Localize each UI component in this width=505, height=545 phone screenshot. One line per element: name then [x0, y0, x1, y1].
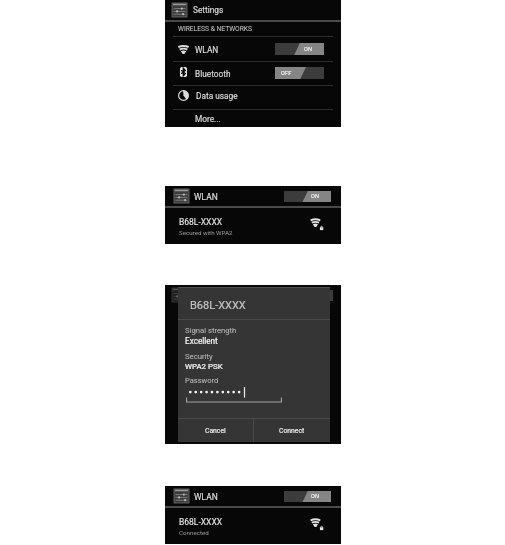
- staticText: WLAN: [195, 45, 219, 55]
- button[interactable]: [165, 208, 341, 244]
- staticText: Connected: [179, 529, 209, 536]
- button[interactable]: [165, 186, 341, 206]
- staticText: Cancel: [205, 427, 226, 435]
- button[interactable]: Connect: [254, 419, 330, 442]
- staticText: WIRELESS & NETWORKS: [178, 25, 252, 33]
- button[interactable]: Turn WLAN off: [284, 491, 331, 502]
- staticText: Connect: [279, 427, 305, 435]
- button[interactable]: Cancel: [178, 419, 253, 442]
- button[interactable]: [165, 486, 341, 506]
- staticText: Data usage: [196, 91, 238, 101]
- staticText: ON: [304, 46, 313, 53]
- staticText: ON: [311, 493, 320, 500]
- button[interactable]: Turn Bluetooth on: [275, 67, 324, 79]
- button[interactable]: [186, 386, 282, 404]
- staticText: OFF: [281, 70, 292, 77]
- staticText: Excellent: [185, 336, 218, 346]
- button[interactable]: [165, 62, 341, 86]
- staticText: B68L-XXXX: [190, 299, 246, 312]
- staticText: Password: [185, 376, 219, 385]
- staticText: Bluetooth: [195, 69, 231, 79]
- button[interactable]: [165, 37, 341, 62]
- staticText: B68L-XXXX: [179, 517, 223, 527]
- button[interactable]: Turn WLAN off: [275, 43, 324, 55]
- button[interactable]: [165, 508, 341, 544]
- button[interactable]: [165, 0, 341, 20]
- button[interactable]: [165, 86, 341, 110]
- staticText: WPA2 PSK: [185, 362, 223, 371]
- staticText: More...: [195, 114, 221, 124]
- staticText: WLAN: [194, 492, 218, 502]
- staticText: Signal strength: [185, 326, 237, 335]
- staticText: ON: [311, 193, 320, 200]
- staticText: Secured with WPA2: [179, 229, 233, 236]
- staticText: B68L-XXXX: [179, 217, 223, 227]
- staticText: WLAN: [194, 192, 218, 202]
- button[interactable]: [165, 110, 341, 128]
- staticText: Settings: [193, 5, 224, 15]
- button[interactable]: Turn WLAN off: [284, 191, 331, 202]
- staticText: Security: [185, 352, 213, 361]
